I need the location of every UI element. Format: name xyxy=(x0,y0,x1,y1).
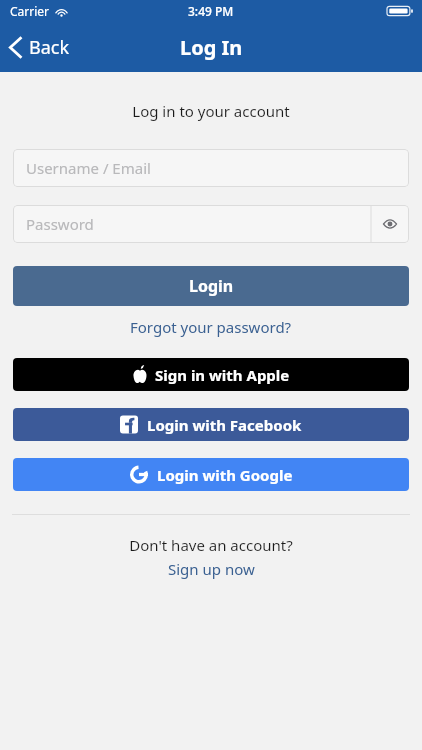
button[interactable]: Sign in with Apple xyxy=(13,358,409,391)
button[interactable]: Sign up now xyxy=(0,557,422,581)
staticText: Login with Google xyxy=(157,465,293,485)
button[interactable]: Back xyxy=(0,29,84,66)
staticText: 3:49 PM xyxy=(188,3,234,19)
staticText: Sign up now xyxy=(168,559,255,579)
button[interactable]: Forgot your password? xyxy=(0,312,422,342)
staticText: Login xyxy=(189,275,234,297)
staticText: Don't have an account? xyxy=(0,535,422,555)
button[interactable]: Password xyxy=(13,205,371,243)
button[interactable]: Show password xyxy=(371,205,409,243)
button[interactable]: Username / Email xyxy=(13,149,409,187)
button[interactable]: Login with Google xyxy=(13,458,409,491)
staticText: Sign in with Apple xyxy=(155,365,290,385)
button[interactable]: Login with Facebook xyxy=(13,408,409,441)
button[interactable]: Login xyxy=(13,266,409,306)
staticText: Log in to your account xyxy=(0,101,422,121)
staticText: Username / Email xyxy=(26,158,151,178)
staticText: Password xyxy=(26,214,94,234)
staticText: Log In xyxy=(180,34,243,61)
staticText: Login with Facebook xyxy=(147,415,302,435)
staticText: Forgot your password? xyxy=(130,317,292,337)
staticText: Carrier xyxy=(10,3,50,19)
staticText: Back xyxy=(29,35,70,60)
